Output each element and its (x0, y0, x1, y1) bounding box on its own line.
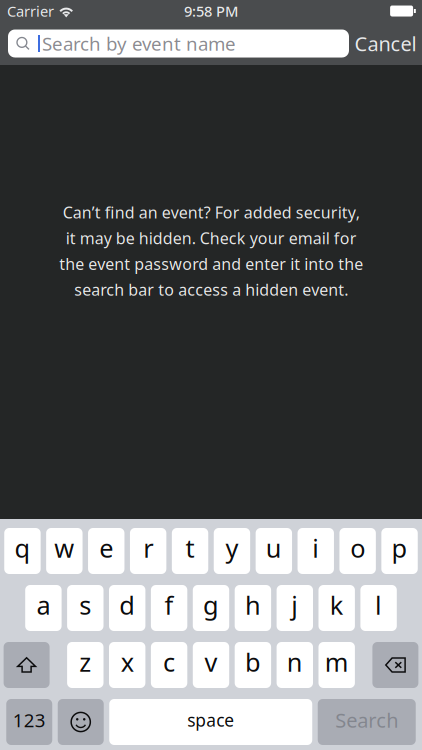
staticText: r (143, 531, 153, 565)
staticText: j (291, 588, 298, 622)
staticText: b (245, 645, 261, 679)
button[interactable]: Cancel (349, 23, 422, 63)
staticText: a (36, 588, 50, 622)
staticText: n (287, 645, 303, 679)
button[interactable]: l (360, 585, 397, 631)
button[interactable]: d (109, 585, 145, 631)
staticText: 9:58 PM (184, 1, 238, 21)
staticText: l (375, 588, 382, 622)
staticText: k (330, 588, 344, 622)
button[interactable]: j (277, 585, 313, 631)
staticText: q (14, 531, 30, 565)
staticText: search bar to access a hidden event. (74, 279, 348, 300)
staticText: Cancel (354, 30, 416, 57)
button[interactable]: x (109, 642, 145, 688)
button[interactable]: g (193, 585, 229, 631)
staticText: e (99, 531, 113, 565)
button[interactable]: c (151, 642, 187, 688)
staticText: u (266, 531, 282, 565)
staticText: o (350, 531, 365, 565)
staticText: f (165, 588, 174, 622)
button[interactable]: Shift (4, 642, 50, 688)
staticText: i (312, 531, 319, 565)
staticText: g (203, 588, 219, 622)
staticText: w (54, 531, 74, 565)
button[interactable]: v (193, 642, 229, 688)
staticText: p (392, 531, 408, 565)
button[interactable]: k (318, 585, 355, 631)
button[interactable]: n (277, 642, 313, 688)
staticText: y (225, 531, 238, 565)
staticText: it may be hidden. Check your email for (65, 227, 356, 249)
button[interactable]: y (214, 528, 250, 574)
button[interactable]: w (46, 528, 83, 574)
button[interactable]: q (4, 528, 41, 574)
staticText: t (186, 531, 195, 565)
staticText: 123 (13, 708, 46, 732)
button[interactable]: Emoji (58, 699, 104, 745)
staticText: Search (335, 707, 398, 733)
button[interactable]: o (339, 528, 376, 574)
button[interactable]: Delete (372, 642, 418, 688)
button[interactable]: f (151, 585, 187, 631)
staticText: h (245, 588, 261, 622)
button[interactable]: z (67, 642, 103, 688)
staticText: the event password and enter it into the (59, 253, 363, 274)
button[interactable]: h (235, 585, 271, 631)
staticText: d (119, 588, 135, 622)
staticText: x (121, 645, 134, 679)
staticText: c (163, 645, 175, 679)
button[interactable]: r (130, 528, 166, 574)
button[interactable]: u (256, 528, 292, 574)
button[interactable]: space (109, 699, 312, 745)
staticText: space (187, 708, 234, 731)
staticText: v (204, 645, 217, 679)
staticText: m (325, 645, 349, 679)
button[interactable]: e (88, 528, 124, 574)
button[interactable]: m (318, 642, 355, 688)
button[interactable]: a (25, 585, 62, 631)
staticText: Search by event name (42, 31, 236, 56)
button[interactable]: 123 (6, 699, 52, 745)
staticText: z (79, 645, 91, 679)
staticText: s (79, 588, 91, 622)
button[interactable]: t (172, 528, 208, 574)
button[interactable]: i (298, 528, 334, 574)
button[interactable]: Search (318, 699, 416, 745)
staticText: Carrier (7, 1, 54, 21)
button[interactable]: p (381, 528, 418, 574)
button[interactable]: s (67, 585, 103, 631)
button[interactable]: b (235, 642, 271, 688)
staticText: Can’t find an event? For added security, (62, 202, 359, 223)
